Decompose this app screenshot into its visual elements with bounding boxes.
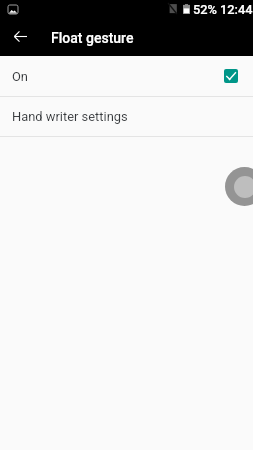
staticText: Float gesture [51,30,134,46]
staticText: 12:44 [220,2,253,17]
button[interactable]: Navigate up [7,24,34,51]
button[interactable]: Floating gesture ball [225,167,253,206]
staticText: 52% [193,2,217,17]
staticText: Hand writer settings [12,109,128,124]
button[interactable]: Hand writer settings [0,97,253,136]
staticText: On [12,69,28,84]
button[interactable]: On, checked [224,69,238,83]
other: Screenshot [8,5,18,14]
button[interactable]: On [0,56,253,96]
